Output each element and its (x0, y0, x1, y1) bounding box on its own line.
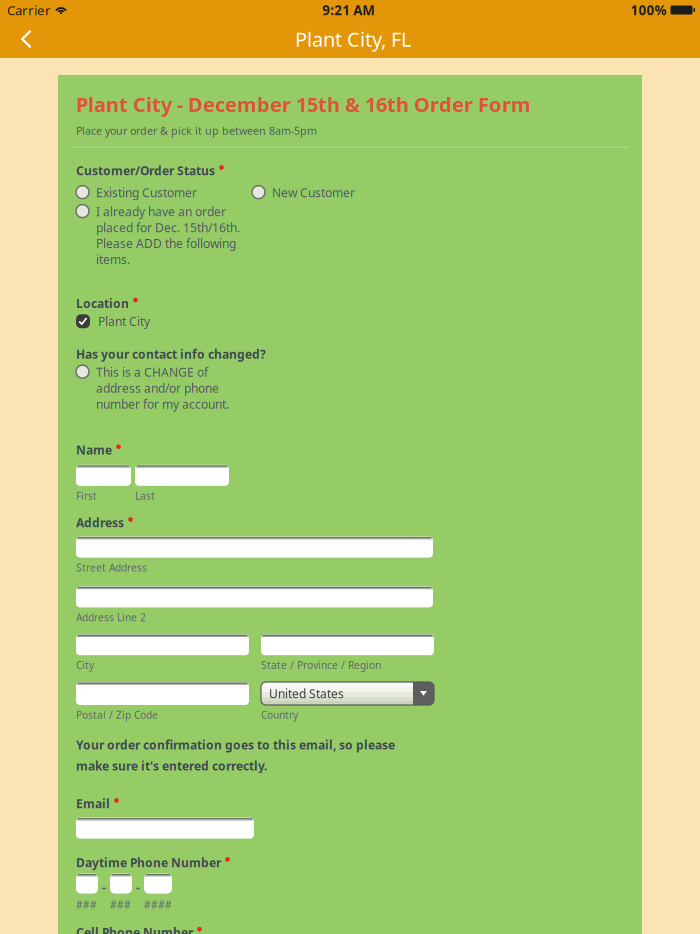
staticText: Has your contact info changed? (76, 346, 266, 362)
staticText: This is a CHANGE of (96, 364, 208, 380)
staticText: Please ADD the following (96, 235, 236, 251)
staticText: Country (261, 708, 298, 722)
staticText: I already have an order (96, 204, 226, 219)
button[interactable]: New Customer (252, 185, 355, 201)
staticText: Existing Customer (96, 185, 197, 201)
staticText: ### (110, 898, 131, 911)
staticText: - (102, 880, 106, 895)
staticText: Email (76, 796, 110, 812)
button[interactable]: This is a CHANGE of (76, 364, 229, 412)
staticText: Plant City (98, 313, 150, 329)
staticText: Last (135, 489, 155, 503)
staticText: number for my account. (96, 396, 229, 412)
staticText: items. (96, 251, 130, 267)
staticText: Address Line 2 (76, 610, 146, 624)
staticText: New Customer (272, 185, 355, 201)
button[interactable]: Back (0, 20, 46, 57)
staticText: 100% (630, 1, 666, 19)
staticText: ### (76, 898, 97, 911)
staticText: - (136, 880, 140, 895)
button[interactable]: Plant City (76, 313, 150, 329)
button[interactable]: Existing Customer (76, 185, 197, 201)
staticText: address and/or phone (96, 380, 219, 396)
staticText: Place your order & pick it up between 8a… (76, 124, 317, 138)
staticText: Location (76, 295, 129, 311)
staticText: placed for Dec. 15th/16th. (96, 219, 240, 235)
button[interactable]: I already have an order (76, 204, 240, 267)
staticText: Cell Phone Number (76, 924, 193, 934)
staticText: #### (144, 898, 172, 911)
staticText: City (76, 658, 94, 672)
staticText: Postal / Zip Code (76, 708, 158, 722)
staticText: Carrier (7, 1, 51, 19)
staticText: Street Address (76, 561, 147, 574)
staticText: make sure it's entered correctly. (76, 758, 267, 774)
staticText: Plant City, FL (295, 26, 411, 52)
staticText: First (76, 489, 97, 503)
button[interactable]: United States (261, 682, 434, 705)
staticText: Name (76, 442, 112, 458)
staticText: 9:21 AM (322, 1, 375, 19)
staticText: State / Province / Region (261, 658, 381, 672)
staticText: Plant City - December 15th & 16th Order … (76, 91, 531, 118)
staticText: Your order confirmation goes to this ema… (76, 737, 395, 753)
staticText: Address (76, 515, 124, 531)
staticText: Daytime Phone Number (76, 855, 221, 870)
staticText: Customer/Order Status (76, 163, 215, 179)
staticText: United States (269, 686, 344, 701)
